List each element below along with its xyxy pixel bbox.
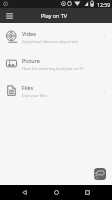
staticText: Cast your files (22, 93, 48, 98)
staticText: Picture (22, 57, 40, 64)
button[interactable]: Open navigation menu (3, 9, 16, 22)
button[interactable]: Video (0, 23, 112, 50)
staticText: Enjoy local videos on big screen (22, 39, 79, 44)
button[interactable]: Recent apps (80, 185, 95, 200)
staticText: Play on TV (41, 12, 68, 19)
button[interactable]: Files (0, 77, 112, 104)
staticText: Video (22, 30, 37, 37)
staticText: Files (22, 84, 34, 91)
button[interactable]: Picture (0, 50, 112, 77)
button[interactable]: Cast to TV (94, 168, 106, 180)
staticText: Have fun watching local pics on TV (22, 66, 84, 71)
staticText: 12:59 (97, 1, 111, 8)
button[interactable]: Home (49, 185, 64, 200)
button[interactable]: Back (17, 185, 32, 200)
